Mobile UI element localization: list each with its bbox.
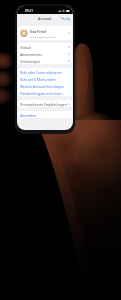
- staticText: Abmelden: [20, 113, 36, 117]
- staticText: Weitere Account hinzufügen: [20, 84, 64, 88]
- button[interactable]: Abonnements: [18, 50, 72, 57]
- button[interactable]: Abmelden: [18, 111, 72, 118]
- staticText: eva.fried@icloud.com: [30, 35, 56, 38]
- button[interactable]: Weitere Account hinzufügen: [18, 82, 72, 89]
- button[interactable]: Personalisierte Empfehlungen: [18, 100, 72, 107]
- button[interactable]: Familienfreigabe einrichten: [18, 89, 72, 96]
- staticText: Rufe per E-Mail senden: [20, 77, 56, 81]
- staticText: Account: [38, 16, 52, 21]
- staticText: Personalisierte Empfehlungen: [20, 102, 67, 106]
- button[interactable]: Rufe per E-Mail senden: [18, 75, 72, 82]
- staticText: Fertig: [61, 16, 71, 20]
- staticText: Eva Fried: [30, 29, 46, 34]
- button[interactable]: Verlauf: [18, 43, 72, 50]
- staticText: Verlauf: [20, 45, 32, 49]
- button[interactable]: Umleitungen: [18, 57, 72, 64]
- staticText: Umleitungen: [20, 59, 41, 63]
- button[interactable]: Eva Fried: [18, 26, 72, 40]
- button[interactable]: Fertig: [58, 14, 73, 22]
- button[interactable]: Rufe oder Codes aktivieren: [18, 68, 72, 75]
- staticText: 09:41: [25, 9, 33, 13]
- staticText: Familienfreigabe einrichten: [20, 91, 63, 95]
- staticText: Abonnements: [20, 52, 42, 56]
- staticText: Rufe oder Codes aktivieren: [20, 70, 62, 74]
